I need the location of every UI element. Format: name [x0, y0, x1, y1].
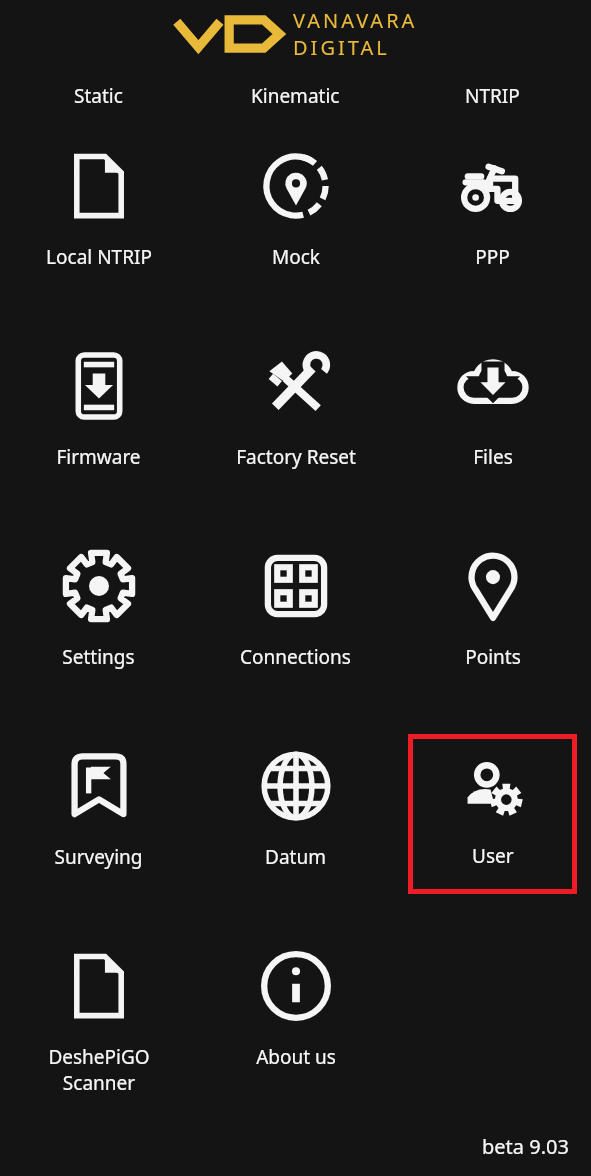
staticText: Settings	[62, 644, 135, 670]
button[interactable]: Firmware	[0, 324, 197, 524]
button[interactable]: Connections	[197, 524, 394, 724]
button[interactable]: Files	[394, 324, 591, 524]
staticText: NTRIP	[465, 83, 520, 109]
staticText: Files	[473, 444, 513, 470]
button[interactable]: Mock	[197, 124, 394, 324]
staticText: Connections	[240, 644, 351, 670]
staticText: beta 9.03	[482, 1133, 569, 1160]
button[interactable]: DeshePiGO Scanner	[0, 924, 197, 1124]
staticText: Kinematic	[251, 83, 340, 109]
staticText: DeshePiGO Scanner	[48, 1044, 150, 1096]
staticText: PPP	[475, 244, 510, 270]
button[interactable]: Local NTRIP	[0, 124, 197, 324]
button[interactable]: Points	[394, 524, 591, 724]
staticText: Points	[465, 644, 521, 670]
staticText: Firmware	[56, 444, 141, 470]
staticText: Mock	[272, 244, 320, 270]
button[interactable]: User	[408, 734, 577, 894]
button[interactable]: Kinematic	[197, 68, 394, 124]
staticText: Datum	[265, 844, 326, 870]
staticText: Static	[74, 83, 123, 109]
button[interactable]: Surveying	[0, 724, 197, 924]
button[interactable]: Factory Reset	[197, 324, 394, 524]
staticText: VANAVARA	[293, 7, 418, 34]
button[interactable]: NTRIP	[394, 68, 591, 124]
button[interactable]: About us	[197, 924, 394, 1124]
button[interactable]: PPP	[394, 124, 591, 324]
staticText: About us	[256, 1044, 336, 1070]
button[interactable]: Static	[0, 68, 197, 124]
staticText: Local NTRIP	[46, 244, 152, 270]
staticText: Factory Reset	[236, 444, 356, 470]
staticText: User	[472, 843, 514, 869]
staticText: DIGITAL	[293, 34, 390, 61]
staticText: Surveying	[54, 844, 143, 870]
button[interactable]: Datum	[197, 724, 394, 924]
button[interactable]: Settings	[0, 524, 197, 724]
